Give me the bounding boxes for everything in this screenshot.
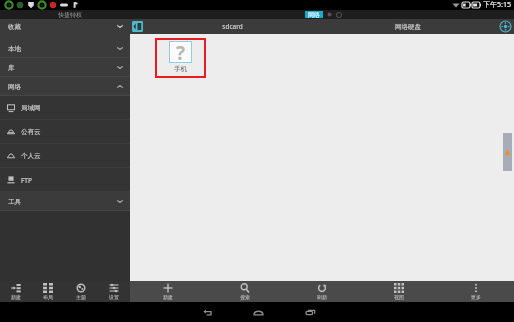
button[interactable]: 网络硬盘 [320, 19, 496, 34]
button[interactable]: 刷新 [283, 281, 360, 302]
staticText: 网络 [8, 83, 21, 91]
staticText: 新建 [163, 294, 173, 300]
staticText: 布局 [43, 294, 53, 300]
button[interactable]: 收藏 [0, 19, 130, 34]
staticText: 搜索 [240, 294, 250, 300]
staticText: ? [176, 40, 186, 62]
staticText: 主题 [76, 294, 86, 300]
staticText: 快捷特权 [58, 11, 82, 19]
button[interactable]: Back [197, 302, 217, 322]
button[interactable]: 主题 [64, 281, 97, 302]
staticText: 网络 [308, 11, 320, 18]
staticText: 更多 [471, 294, 481, 300]
staticText: 刷新 [317, 294, 327, 300]
button[interactable]: 新建 [0, 281, 32, 302]
button[interactable]: 本地 [0, 39, 130, 58]
staticText: 工具 [8, 198, 21, 206]
staticText: 本地 [8, 45, 21, 53]
staticText: 局域网 [21, 104, 41, 112]
button[interactable]: 视图 [360, 281, 437, 302]
button[interactable]: 库 [0, 58, 130, 77]
staticText: 下午5:15 [483, 0, 511, 10]
button[interactable]: FTP [0, 168, 130, 192]
button[interactable]: 网络 [0, 77, 130, 96]
button[interactable]: Recent apps [300, 302, 320, 322]
staticText: 公有云 [21, 128, 41, 136]
staticText: FTP [21, 176, 32, 185]
staticText: 新建 [11, 294, 21, 300]
button[interactable]: ? [155, 38, 206, 78]
button[interactable]: 公有云 [0, 120, 130, 144]
button[interactable]: 个人云 [0, 144, 130, 168]
button[interactable]: Toggle panel [130, 19, 145, 34]
button[interactable]: 搜索 [206, 281, 283, 302]
button[interactable]: 设置 [97, 281, 130, 302]
button[interactable]: Settings [496, 19, 514, 34]
staticText: 库 [8, 64, 15, 72]
staticText: 手机 [174, 65, 187, 73]
button[interactable]: 局域网 [0, 96, 130, 120]
button[interactable]: 新建 [130, 281, 206, 302]
staticText: 视图 [394, 294, 404, 300]
staticText: 收藏 [8, 23, 21, 31]
staticText: 设置 [109, 294, 119, 300]
button[interactable]: 更多 [437, 281, 514, 302]
button[interactable]: 布局 [32, 281, 64, 302]
button[interactable]: sdcard [145, 19, 320, 34]
button[interactable]: 工具 [0, 192, 130, 211]
button[interactable]: Home [248, 302, 268, 322]
staticText: 个人云 [21, 152, 41, 160]
